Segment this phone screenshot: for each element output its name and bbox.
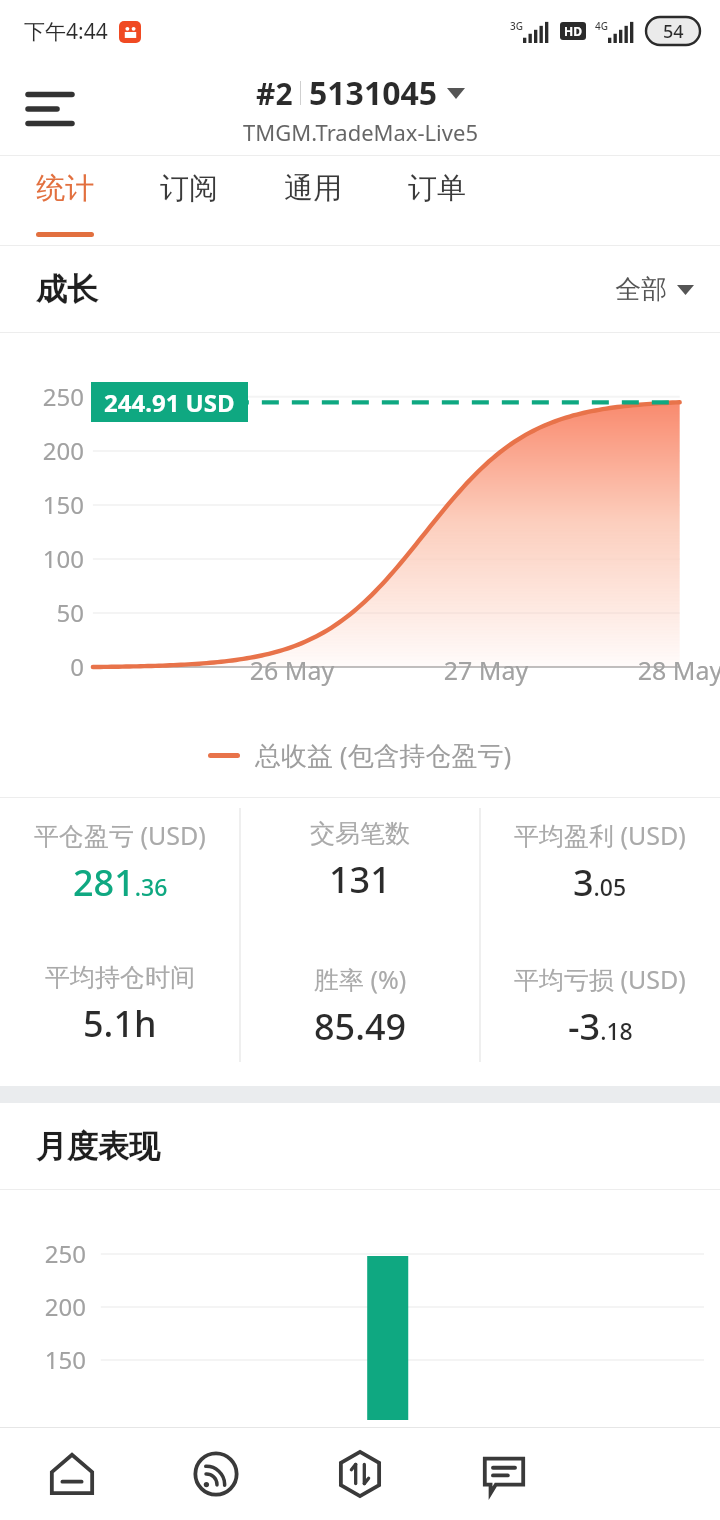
- staticText: 统计: [36, 170, 94, 207]
- staticText: 250: [16, 380, 84, 413]
- button[interactable]: 订阅: [148, 156, 272, 246]
- staticText: 订单: [408, 170, 466, 207]
- staticText: 胜率 (%): [314, 962, 407, 996]
- staticText: -3.18: [568, 1002, 633, 1051]
- staticText: 200: [18, 1290, 86, 1323]
- staticText: 平均亏损 (USD): [514, 962, 686, 996]
- staticText: 成长: [36, 270, 98, 309]
- staticText: 下午4:44: [24, 17, 108, 46]
- staticText: 总收益 (包含持仓盈亏): [255, 737, 512, 773]
- staticText: HD: [564, 23, 582, 39]
- button[interactable]: 通用: [272, 156, 396, 246]
- staticText: 交易笔数: [310, 818, 410, 849]
- staticText: 订阅: [160, 170, 218, 207]
- staticText: 5131045: [309, 71, 438, 115]
- staticText: 全部: [615, 273, 667, 306]
- staticText: 27 May: [426, 653, 546, 687]
- staticText: 150: [18, 1343, 86, 1376]
- button[interactable]: Home: [0, 1428, 144, 1520]
- button[interactable]: 胜率 (%): [240, 942, 480, 1086]
- staticText: 131: [329, 855, 391, 904]
- staticText: 26 May: [232, 653, 352, 687]
- button[interactable]: Trade: [288, 1428, 432, 1520]
- staticText: 85.49: [314, 1002, 407, 1051]
- staticText: TMGM.TradeMax-Live5: [243, 117, 478, 147]
- staticText: 5.1h: [83, 999, 157, 1048]
- staticText: 平均盈利 (USD): [514, 818, 686, 852]
- staticText: 平仓盈亏 (USD): [34, 818, 206, 852]
- staticText: 50: [16, 596, 84, 629]
- staticText: 平均持仓时间: [45, 962, 195, 993]
- staticText: 281.36: [73, 858, 168, 907]
- button[interactable]: 244.91 USD: [104, 382, 235, 422]
- button[interactable]: Menu: [12, 71, 88, 147]
- button[interactable]: 交易笔数: [240, 798, 480, 942]
- button[interactable]: 平仓盈亏 (USD): [0, 798, 240, 942]
- staticText: 月度表现: [36, 1127, 160, 1166]
- button[interactable]: 全部: [615, 273, 694, 306]
- button[interactable]: 平均盈利 (USD): [480, 798, 720, 942]
- button[interactable]: 订单: [396, 156, 520, 246]
- staticText: 54: [663, 19, 684, 44]
- staticText: #2: [256, 73, 293, 114]
- staticText: 通用: [284, 170, 342, 207]
- staticText: 28 May: [620, 653, 720, 687]
- button[interactable]: Messages: [432, 1428, 576, 1520]
- staticText: 3.05: [573, 858, 627, 907]
- button[interactable]: Signals: [144, 1428, 288, 1520]
- staticText: 100: [16, 542, 84, 575]
- staticText: 0: [16, 650, 84, 683]
- button[interactable]: 平均持仓时间: [0, 942, 240, 1086]
- staticText: 244.91 USD: [104, 386, 235, 419]
- button[interactable]: 统计: [24, 156, 148, 246]
- button[interactable]: #2: [243, 71, 478, 147]
- staticText: 200: [16, 434, 84, 467]
- staticText: 4G: [595, 19, 608, 33]
- staticText: 250: [18, 1237, 86, 1270]
- staticText: 150: [16, 488, 84, 521]
- staticText: 3G: [510, 19, 523, 33]
- button[interactable]: 平均亏损 (USD): [480, 942, 720, 1086]
